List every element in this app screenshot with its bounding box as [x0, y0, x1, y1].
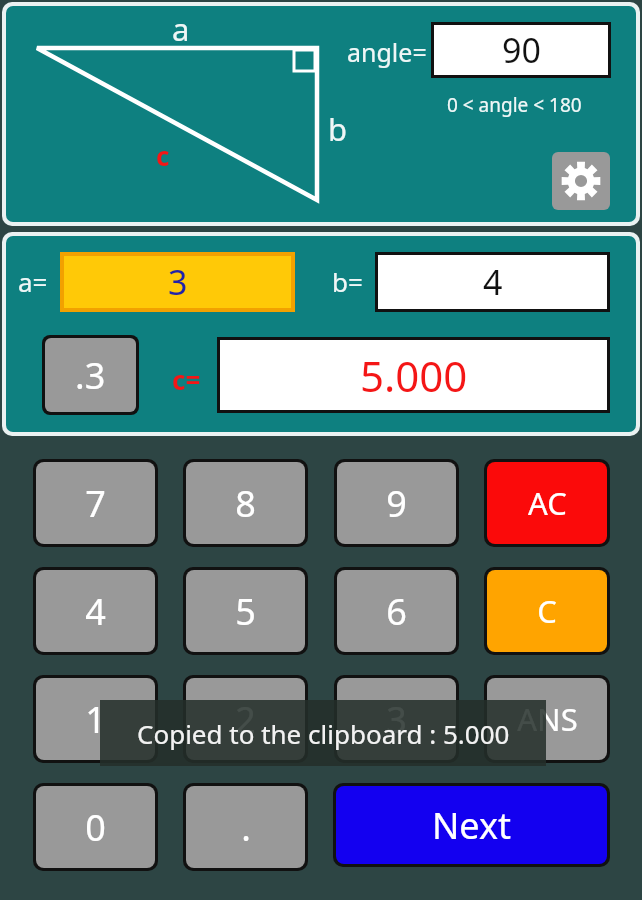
staticText: angle= [347, 35, 427, 69]
button[interactable]: 5.000 [220, 340, 607, 410]
staticText: .3 [75, 351, 106, 400]
button[interactable]: 6 [337, 570, 456, 652]
staticText: c [156, 138, 170, 173]
button[interactable]: 4 [378, 255, 607, 309]
button[interactable]: 90 [434, 25, 608, 75]
staticText: 1 [85, 695, 106, 744]
button[interactable]: Next [336, 786, 607, 864]
staticText: . [241, 803, 251, 852]
staticText: AC [528, 482, 567, 524]
staticText: 0 [85, 803, 106, 852]
staticText: 0 < angle < 180 [447, 92, 582, 118]
staticText: 9 [386, 479, 407, 528]
button[interactable]: 5 [186, 570, 305, 652]
button[interactable]: ANS [487, 678, 607, 760]
button[interactable]: .3 [45, 338, 136, 412]
staticText: 4 [85, 587, 106, 636]
staticText: b [328, 108, 348, 150]
staticText: 2 [235, 695, 256, 744]
staticText: 3 [386, 695, 407, 744]
staticText: 6 [386, 587, 407, 636]
button[interactable]: 8 [186, 462, 305, 544]
staticText: 4 [483, 259, 503, 305]
staticText: a [172, 8, 190, 50]
staticText: 5 [235, 587, 256, 636]
staticText: 5.000 [360, 347, 468, 404]
button[interactable]: 9 [337, 462, 456, 544]
staticText: 90 [502, 27, 541, 73]
button[interactable]: 3 [337, 678, 456, 760]
button[interactable]: 2 [186, 678, 305, 760]
staticText: 3 [168, 259, 188, 305]
staticText: c= [172, 362, 201, 397]
button[interactable]: C [487, 570, 607, 652]
button[interactable]: 7 [36, 462, 155, 544]
button[interactable]: Settings [552, 152, 610, 210]
staticText: Copied to the clipboard : 5.000 [137, 716, 510, 751]
staticText: b= [332, 264, 363, 299]
button[interactable]: 1 [36, 678, 155, 760]
staticText: a= [18, 264, 48, 299]
button[interactable]: AC [487, 462, 607, 544]
staticText: ANS [517, 698, 578, 740]
staticText: C [537, 590, 557, 632]
button[interactable]: 4 [36, 570, 155, 652]
staticText: Next [432, 801, 511, 850]
staticText: 8 [235, 479, 256, 528]
button[interactable]: 0 [36, 786, 155, 868]
button[interactable]: 3 [64, 256, 291, 308]
button[interactable]: . [186, 786, 305, 868]
staticText: 7 [85, 479, 106, 528]
